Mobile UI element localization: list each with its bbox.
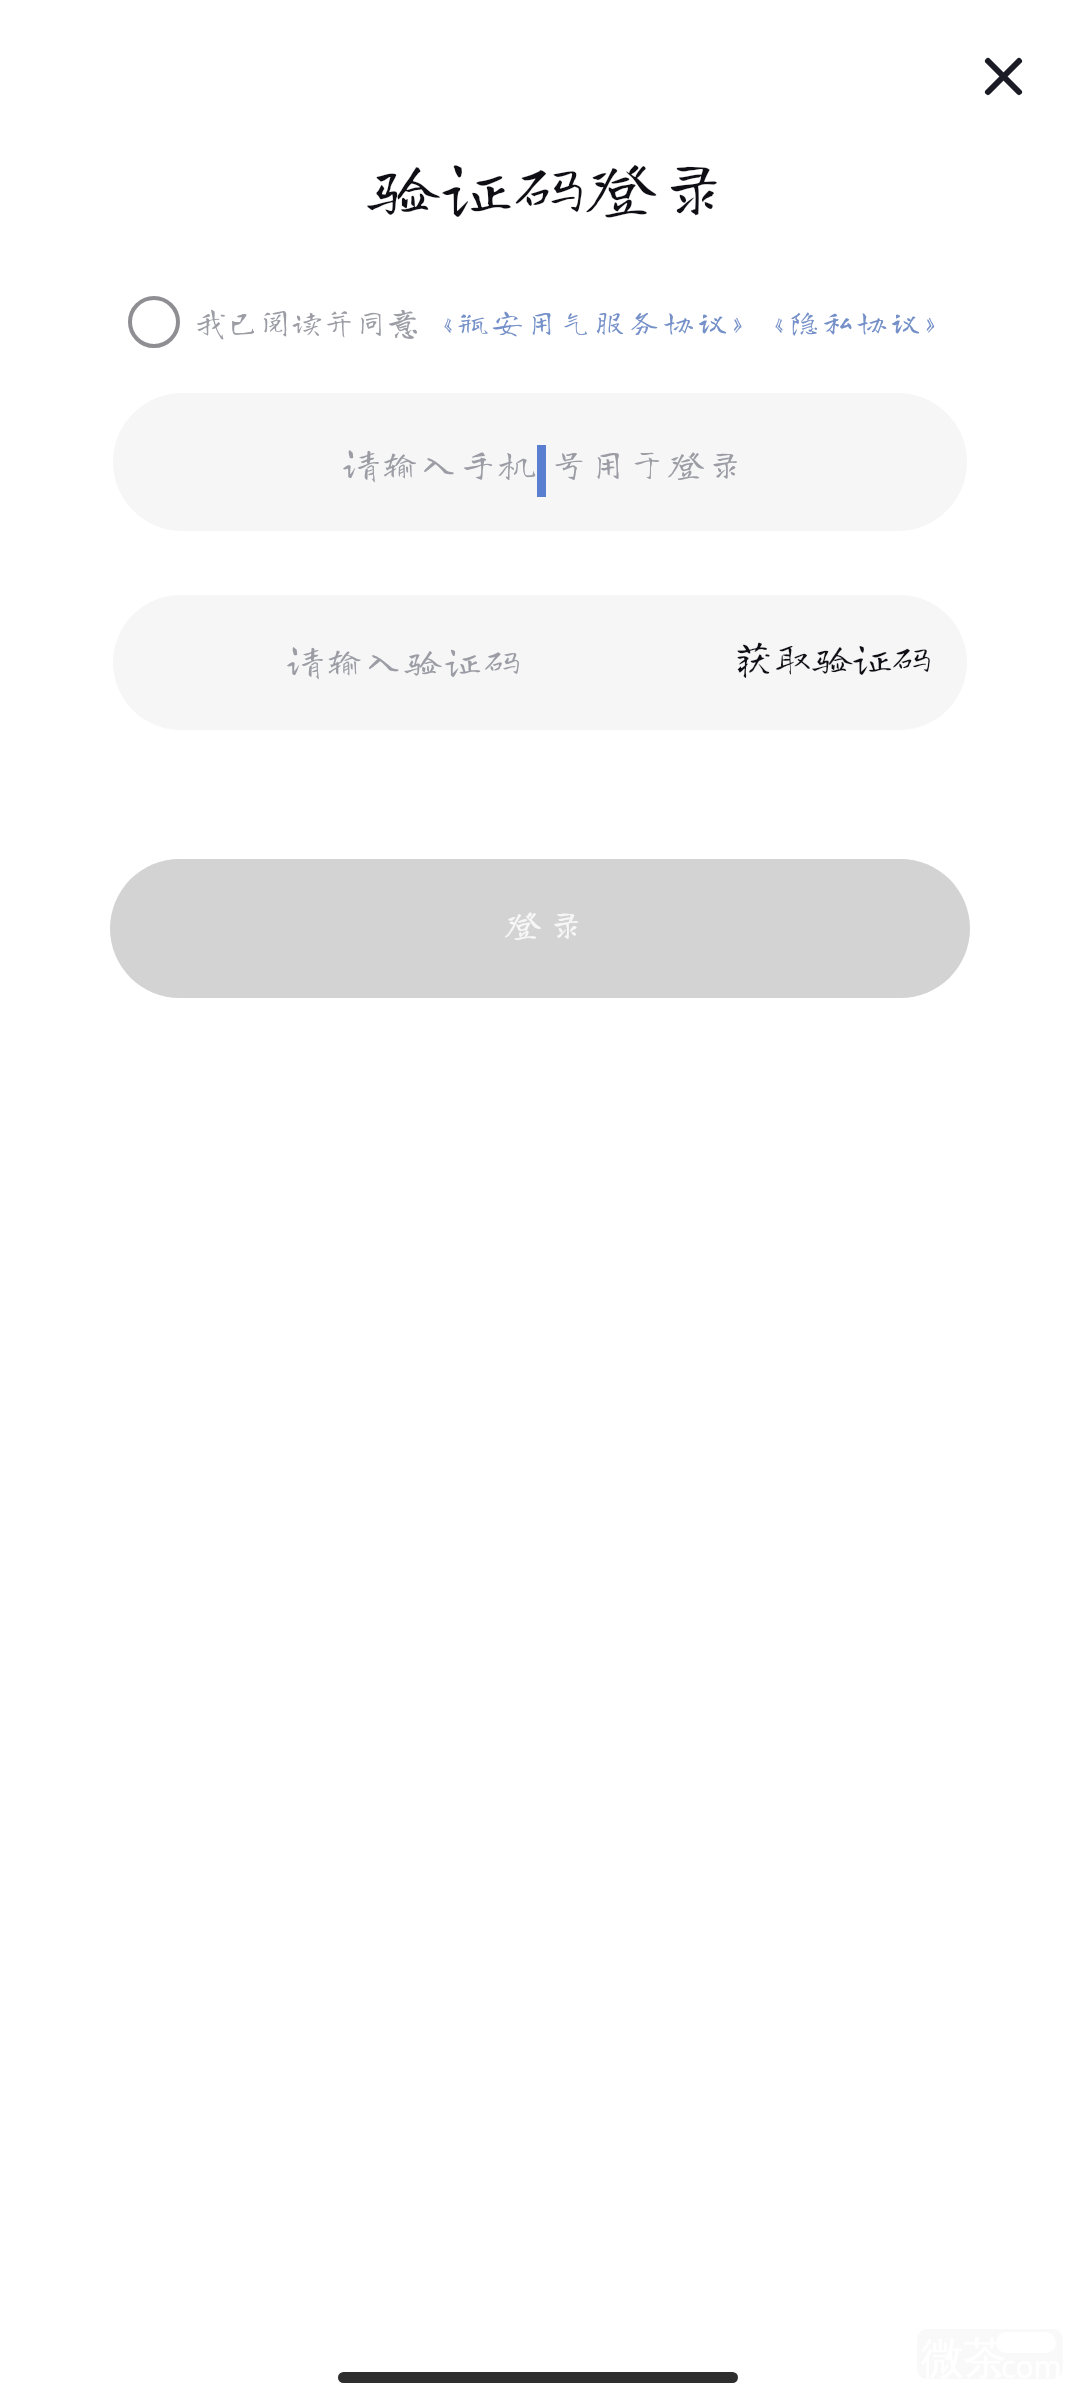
button[interactable]: 登录 — [110, 859, 970, 998]
button[interactable]: 《瓶安用气服务协议》 — [424, 307, 766, 337]
button[interactable]: 请输入验证码 — [113, 595, 733, 730]
staticText: 号用于登录 — [551, 445, 747, 481]
staticText: 请输入手机 — [343, 445, 539, 481]
staticText: 我已阅读并同意 — [195, 306, 420, 338]
staticText: 获取验证码 — [734, 638, 932, 677]
button[interactable]: 《隐私协议》 — [755, 307, 959, 337]
button[interactable]: 请输入手机 — [113, 393, 967, 531]
staticText: 登录 — [505, 905, 592, 941]
staticText: 请输入验证码 — [287, 642, 524, 678]
staticText: 验证码登录 — [10, 150, 1080, 220]
button[interactable]: 我已阅读并同意 — [125, 293, 970, 351]
button[interactable]: Close — [957, 30, 1049, 122]
button[interactable]: 获取验证码 — [712, 620, 954, 695]
